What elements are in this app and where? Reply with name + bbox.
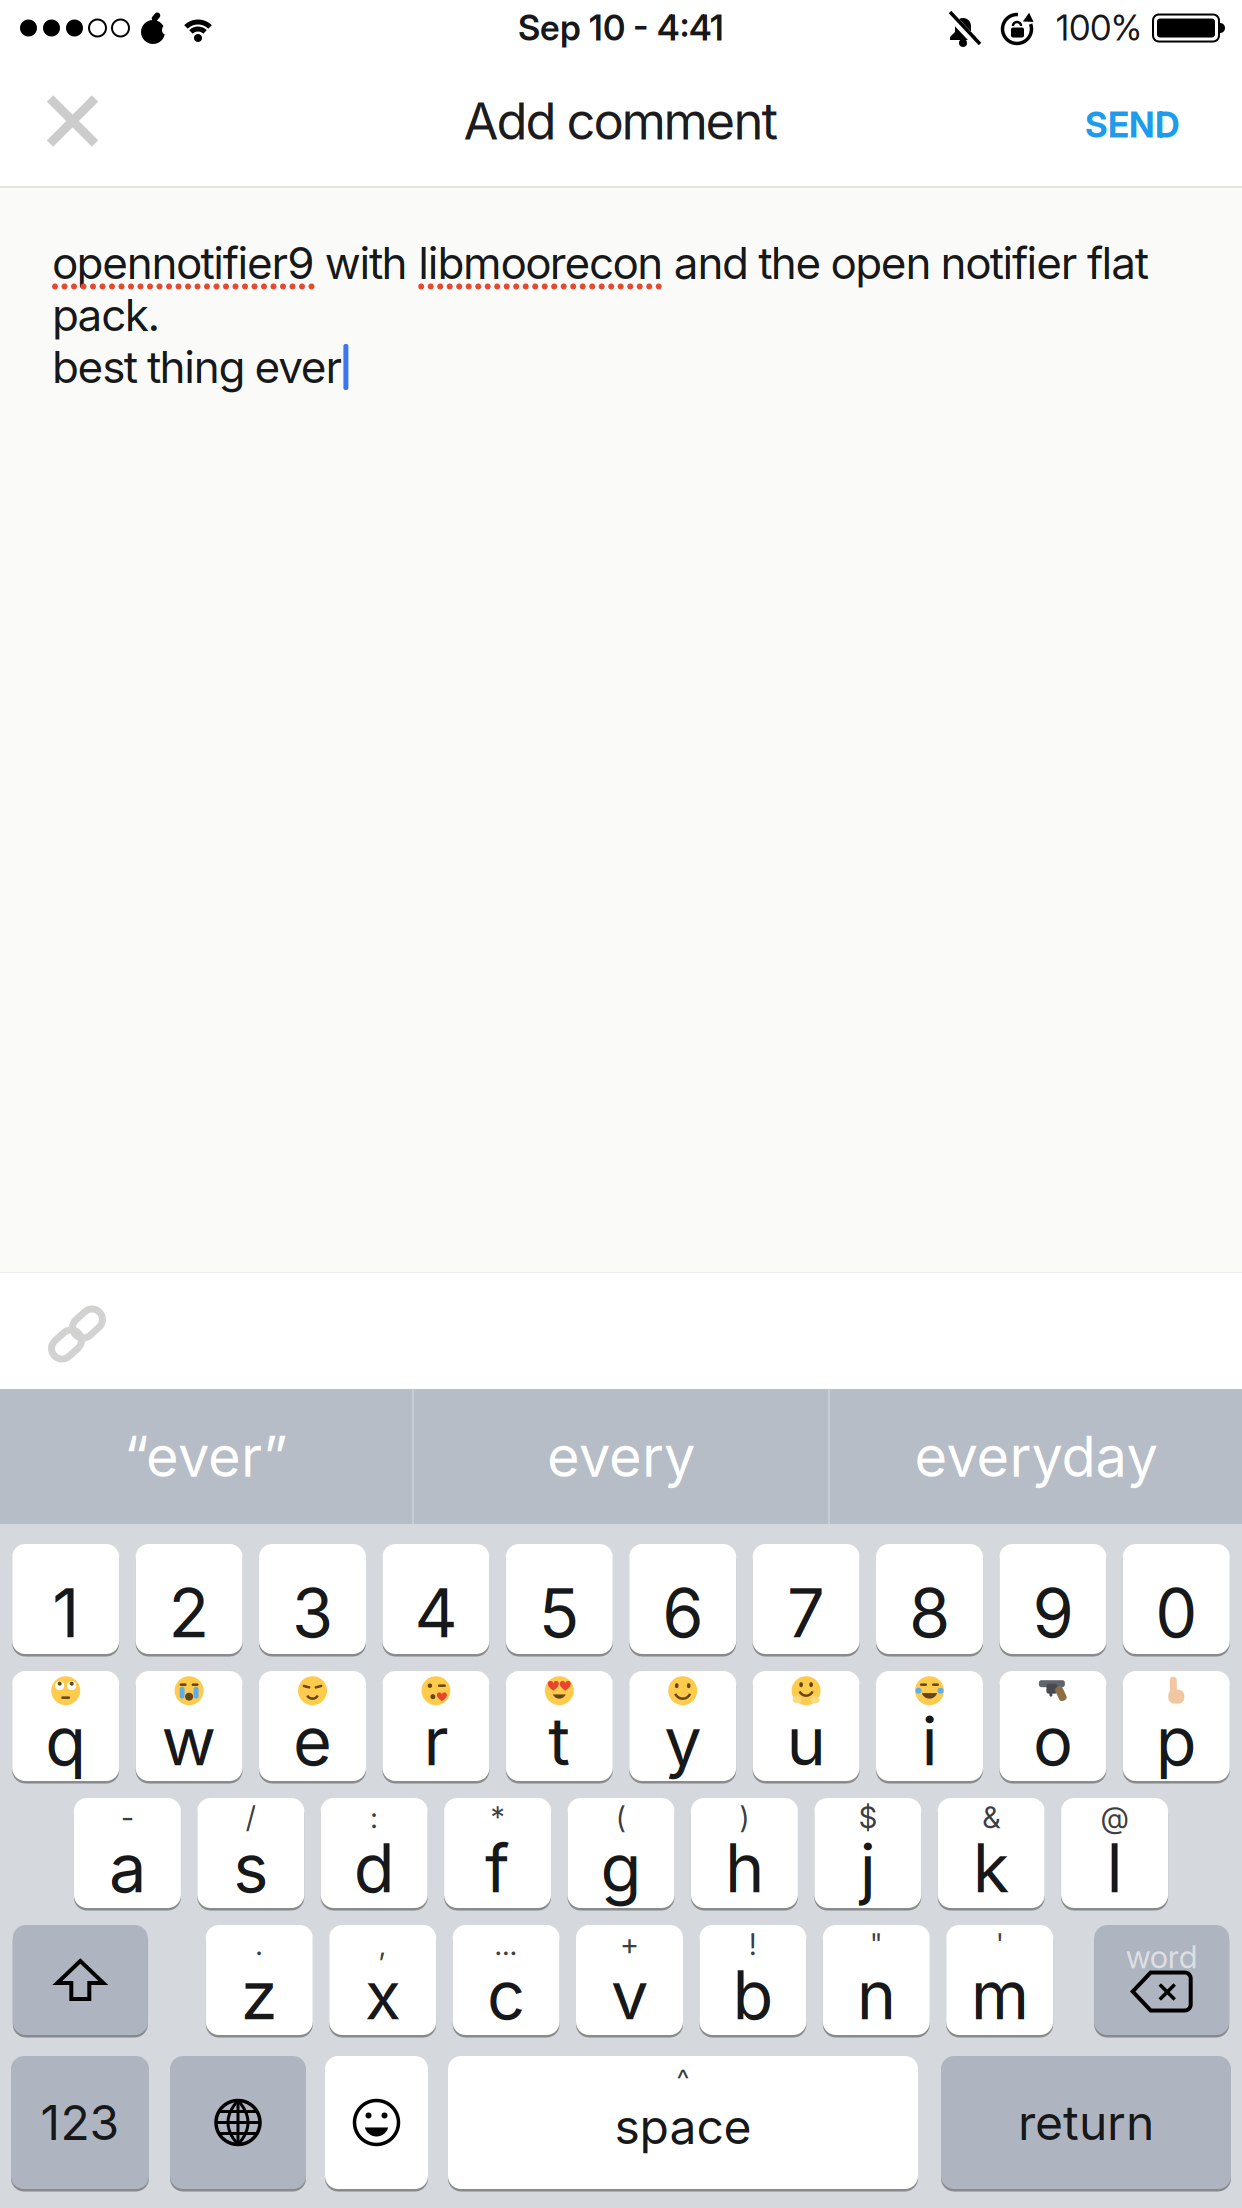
button[interactable]: “ever” — [0, 1389, 412, 1524]
staticText: & — [982, 1800, 1000, 1835]
button[interactable]: @ — [1061, 1798, 1168, 1908]
staticText: s — [233, 1829, 268, 1907]
staticText: … — [495, 1927, 518, 1962]
staticText: a — [109, 1829, 146, 1907]
button[interactable]: Delete — [1094, 1925, 1229, 2035]
button[interactable]: return — [941, 2056, 1231, 2189]
staticText: return — [1018, 2094, 1154, 2151]
staticText: u — [787, 1702, 826, 1780]
staticText: SEND — [1085, 105, 1180, 145]
button[interactable]: 3 — [259, 1544, 366, 1654]
staticText: ) — [739, 1800, 749, 1835]
staticText: j — [860, 1829, 876, 1907]
button[interactable]: q — [12, 1671, 119, 1781]
button[interactable]: , — [329, 1925, 436, 2035]
button[interactable]: ( — [567, 1798, 674, 1908]
button[interactable]: * — [444, 1798, 551, 1908]
button[interactable]: u — [753, 1671, 860, 1781]
staticText: k — [973, 1829, 1010, 1907]
staticText: w — [162, 1702, 217, 1780]
button[interactable]: : — [321, 1798, 428, 1908]
staticText: q — [45, 1702, 86, 1780]
button[interactable]: Insert link — [0, 1272, 101, 1358]
staticText: y — [664, 1702, 701, 1780]
button[interactable]: ^ — [448, 2056, 918, 2189]
staticText: with — [314, 237, 418, 289]
button[interactable]: 1 — [12, 1544, 119, 1654]
button[interactable]: o — [999, 1671, 1106, 1781]
staticText: z — [241, 1956, 278, 2034]
staticText: ( — [616, 1800, 626, 1835]
button[interactable]: 8 — [876, 1544, 983, 1654]
button[interactable]: Numbers — [11, 2056, 149, 2189]
button[interactable]: Shift — [13, 1925, 148, 2035]
button[interactable]: r — [382, 1671, 489, 1781]
button[interactable]: & — [938, 1798, 1045, 1908]
staticText: 1 — [52, 1574, 79, 1652]
staticText: 9 — [1032, 1574, 1073, 1652]
staticText: c — [487, 1956, 525, 2034]
button[interactable]: e — [259, 1671, 366, 1781]
staticText: o — [1033, 1702, 1073, 1780]
button[interactable]: $ — [814, 1798, 921, 1908]
staticText: , — [379, 1927, 387, 1962]
button[interactable]: t — [506, 1671, 613, 1781]
button[interactable]: SEND — [1085, 57, 1242, 185]
button[interactable]: ' — [946, 1925, 1053, 2035]
staticText: t — [548, 1702, 570, 1780]
staticText: r — [423, 1702, 448, 1780]
staticText: g — [600, 1829, 641, 1907]
staticText: “ever” — [124, 1423, 288, 1490]
button[interactable]: Close — [0, 58, 95, 183]
button[interactable]: … — [453, 1925, 560, 2035]
staticText: Add comment — [463, 91, 778, 151]
button[interactable]: " — [823, 1925, 930, 2035]
staticText: m — [971, 1956, 1029, 2034]
button[interactable]: 9 — [999, 1544, 1106, 1654]
button[interactable]: p — [1123, 1671, 1230, 1781]
button[interactable]: 7 — [753, 1544, 860, 1654]
staticText: best thing ever — [52, 341, 342, 393]
button[interactable]: Emoji — [325, 2056, 428, 2189]
button[interactable]: i — [876, 1671, 983, 1781]
button[interactable]: ) — [691, 1798, 798, 1908]
staticText: 4 — [414, 1574, 457, 1652]
staticText: 123 — [40, 2094, 119, 2151]
staticText: 2 — [169, 1574, 210, 1652]
staticText: 3 — [292, 1574, 333, 1652]
button[interactable]: y — [629, 1671, 736, 1781]
staticText: f — [485, 1829, 510, 1907]
staticText: * — [491, 1800, 505, 1835]
button[interactable]: / — [197, 1798, 304, 1908]
staticText: and the open notifier flat — [663, 237, 1149, 289]
staticText: - — [121, 1800, 134, 1835]
staticText: 0 — [1155, 1574, 1197, 1652]
button[interactable]: 6 — [629, 1544, 736, 1654]
staticText: ! — [749, 1927, 757, 1962]
staticText: " — [870, 1927, 883, 1962]
button[interactable]: w — [136, 1671, 243, 1781]
button[interactable]: 2 — [136, 1544, 243, 1654]
button[interactable]: every — [414, 1389, 828, 1524]
button[interactable]: Next keyboard — [170, 2056, 306, 2189]
staticText: d — [354, 1829, 395, 1907]
staticText: 5 — [539, 1574, 580, 1652]
staticText: ' — [996, 1927, 1004, 1962]
staticText: / — [246, 1800, 256, 1835]
button[interactable]: 0 — [1123, 1544, 1230, 1654]
staticText: Sep 10 - 4:41 — [518, 8, 724, 48]
button[interactable]: - — [74, 1798, 181, 1908]
button[interactable]: + — [576, 1925, 683, 2035]
button[interactable]: ! — [699, 1925, 806, 2035]
staticText: : — [370, 1800, 378, 1835]
button[interactable]: 5 — [506, 1544, 613, 1654]
staticText: e — [293, 1702, 332, 1780]
staticText: i — [921, 1702, 937, 1780]
staticText: pack. — [52, 289, 160, 341]
button[interactable]: . — [206, 1925, 313, 2035]
staticText: . — [255, 1927, 263, 1962]
staticText: x — [365, 1956, 401, 2034]
staticText: 100% — [1056, 8, 1142, 48]
button[interactable]: everyday — [830, 1389, 1242, 1524]
button[interactable]: 4 — [382, 1544, 489, 1654]
